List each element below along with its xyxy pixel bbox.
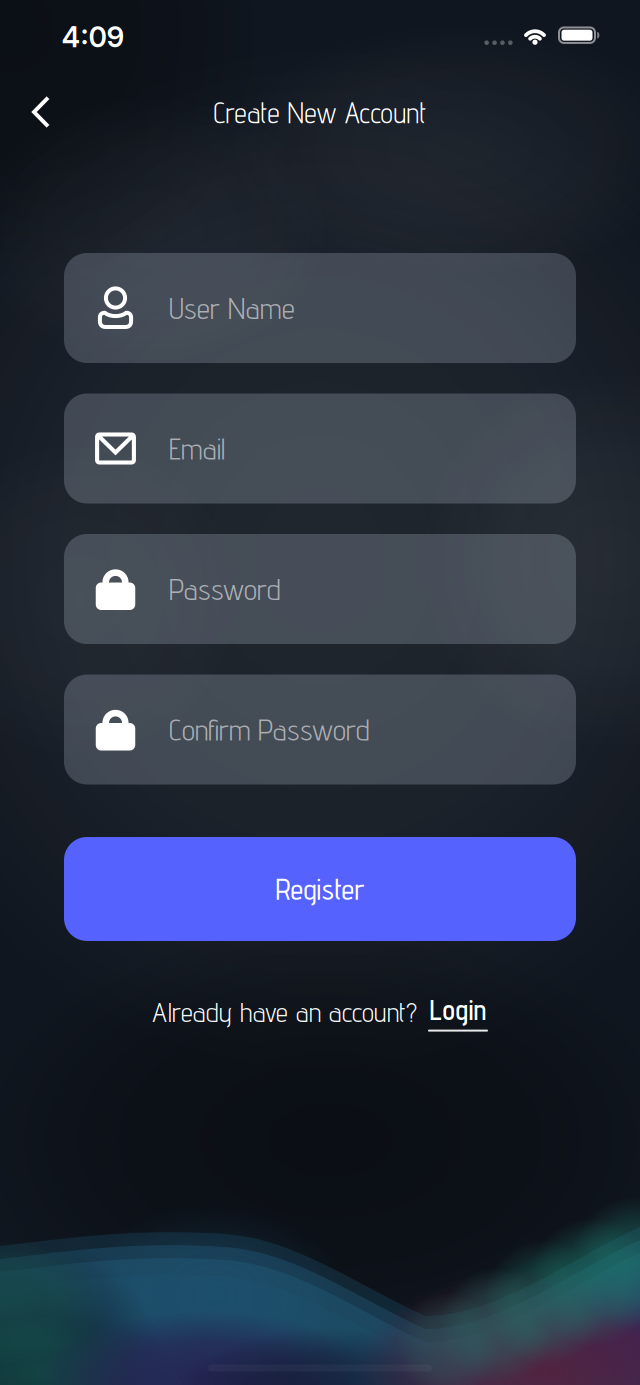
staticText: Email: [169, 431, 225, 466]
staticText: Register: [275, 871, 364, 907]
button[interactable]: User Name: [64, 253, 576, 363]
button[interactable]: Email: [64, 393, 576, 503]
staticText: Already have an account?: [152, 995, 417, 1028]
staticText: User Name: [169, 290, 295, 326]
button[interactable]: Back: [19, 90, 63, 134]
staticText: Create New Account: [213, 96, 426, 130]
staticText: Login: [429, 992, 486, 1027]
staticText: Password: [169, 571, 281, 607]
button[interactable]: Password: [64, 534, 576, 644]
button[interactable]: Login: [428, 992, 488, 1032]
button[interactable]: Register: [64, 837, 576, 941]
button[interactable]: Confirm Password: [64, 674, 576, 784]
staticText: 4:09: [61, 20, 124, 54]
staticText: Confirm Password: [169, 712, 370, 747]
